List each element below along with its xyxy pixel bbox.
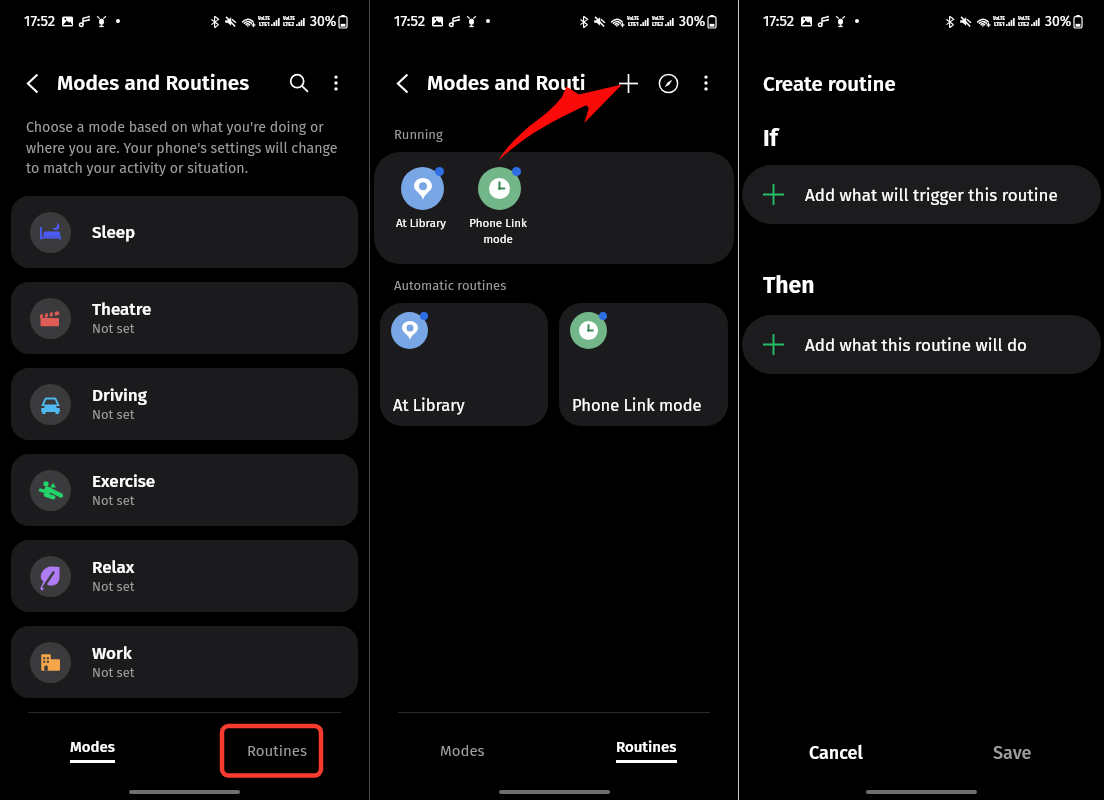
button[interactable]: More options bbox=[691, 68, 721, 98]
button[interactable]: Phone Link mode bbox=[559, 303, 728, 426]
staticText: LTE2 bbox=[652, 21, 664, 28]
button[interactable]: Save bbox=[921, 718, 1104, 788]
staticText: Not set bbox=[92, 407, 135, 423]
staticText: Not set bbox=[92, 321, 135, 337]
staticText: VoLTE bbox=[993, 16, 1005, 21]
staticText: Modes and Routines bbox=[57, 71, 250, 96]
button[interactable]: More options bbox=[321, 68, 351, 98]
staticText: Not set bbox=[92, 665, 135, 681]
button[interactable]: At Library bbox=[391, 167, 453, 230]
staticText: VoLTE bbox=[283, 16, 295, 21]
staticText: LTE1 bbox=[994, 21, 1005, 28]
staticText: VoLTE bbox=[627, 16, 639, 21]
button[interactable]: Add what will trigger this routine bbox=[742, 165, 1101, 224]
button[interactable]: Phone Link mode bbox=[468, 167, 530, 246]
staticText: Exercise bbox=[92, 471, 156, 491]
staticText: Modes bbox=[440, 742, 485, 760]
button[interactable]: Cancel bbox=[739, 718, 921, 788]
staticText: VoLTE bbox=[652, 16, 664, 21]
staticText: 30% bbox=[310, 13, 337, 30]
staticText: Create routine bbox=[763, 72, 896, 97]
button[interactable]: Routines bbox=[184, 713, 369, 788]
staticText: LTE2 bbox=[283, 21, 295, 28]
staticText: Not set bbox=[92, 579, 135, 595]
staticText: Modes and Routi bbox=[427, 71, 586, 96]
button[interactable]: Theatre bbox=[11, 282, 358, 354]
button[interactable]: Exercise bbox=[11, 454, 358, 526]
button[interactable]: Search bbox=[283, 67, 315, 99]
button[interactable]: Modes bbox=[370, 713, 554, 788]
staticText: Relax bbox=[92, 557, 135, 577]
staticText: Then bbox=[763, 271, 815, 299]
staticText: Cancel bbox=[809, 742, 863, 764]
staticText: Save bbox=[993, 742, 1032, 764]
staticText: LTE1 bbox=[259, 21, 270, 28]
button[interactable]: Add routine bbox=[611, 66, 645, 100]
button[interactable]: Sleep bbox=[11, 196, 358, 268]
staticText: 30% bbox=[1045, 13, 1072, 30]
staticText: Driving bbox=[92, 385, 147, 405]
staticText: Automatic routines bbox=[394, 278, 507, 294]
staticText: 17:52 bbox=[394, 12, 426, 30]
staticText: If bbox=[763, 124, 778, 152]
staticText: 30% bbox=[679, 13, 706, 30]
staticText: VoLTE bbox=[258, 16, 270, 21]
button[interactable]: Work bbox=[11, 626, 358, 698]
staticText: At Library bbox=[390, 216, 452, 230]
button[interactable]: Navigate up bbox=[16, 67, 48, 99]
staticText: Modes bbox=[70, 738, 115, 756]
button[interactable]: Modes bbox=[0, 713, 184, 788]
staticText: Sleep bbox=[92, 222, 136, 242]
staticText: Phone Link mode bbox=[467, 216, 529, 246]
button[interactable]: Discover bbox=[651, 66, 685, 100]
staticText: LTE1 bbox=[628, 21, 639, 28]
staticText: 17:52 bbox=[24, 12, 56, 30]
staticText: Routines bbox=[616, 738, 677, 756]
staticText: Work bbox=[92, 643, 132, 663]
staticText: Not set bbox=[92, 493, 135, 509]
staticText: Routines bbox=[247, 742, 307, 760]
staticText: Add what this routine will do bbox=[805, 335, 1028, 355]
staticText: Add what will trigger this routine bbox=[805, 185, 1058, 205]
button[interactable]: Add what this routine will do bbox=[742, 315, 1101, 374]
staticText: Theatre bbox=[92, 299, 152, 319]
staticText: At Library bbox=[393, 396, 465, 416]
button[interactable]: At Library bbox=[380, 303, 548, 426]
staticText: LTE2 bbox=[1018, 21, 1030, 28]
staticText: Choose a mode based on what you're doing… bbox=[26, 119, 351, 176]
button[interactable]: Navigate up bbox=[386, 67, 418, 99]
button[interactable]: Driving bbox=[11, 368, 358, 440]
staticText: Phone Link mode bbox=[572, 396, 702, 416]
staticText: Running bbox=[394, 127, 443, 143]
button[interactable]: Relax bbox=[11, 540, 358, 612]
staticText: 17:52 bbox=[763, 12, 795, 30]
button[interactable]: Routines bbox=[554, 713, 738, 788]
staticText: VoLTE bbox=[1018, 16, 1030, 21]
